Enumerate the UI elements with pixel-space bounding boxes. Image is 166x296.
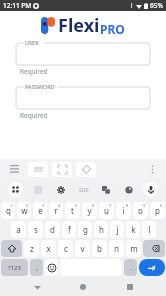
staticText: 8: [126, 203, 129, 208]
button[interactable]: h: [94, 221, 108, 238]
staticText: 3: [42, 203, 45, 208]
button[interactable]: s: [28, 221, 43, 238]
staticText: t: [71, 205, 74, 216]
button[interactable]: Shift: [1, 240, 22, 257]
staticText: c: [64, 243, 68, 254]
staticText: Required: [20, 111, 48, 120]
button[interactable]: o: [133, 202, 148, 219]
button[interactable]: ,: [30, 259, 43, 276]
staticText: PASSWORD: [25, 83, 55, 90]
staticText: r: [54, 205, 58, 216]
button[interactable]: x: [41, 240, 56, 257]
staticText: d: [50, 224, 55, 235]
button[interactable]: j: [110, 221, 124, 238]
button[interactable]: Emoji: [45, 259, 58, 276]
staticText: PRO: [100, 21, 125, 37]
staticText: s: [34, 224, 38, 235]
button[interactable]: Back: [27, 278, 47, 296]
button[interactable]: r: [49, 202, 63, 219]
button[interactable]: k: [126, 221, 140, 238]
button[interactable]: m: [126, 240, 141, 257]
button[interactable]: .: [124, 259, 137, 276]
button[interactable]: a: [11, 221, 26, 238]
staticText: GIF: [79, 186, 89, 194]
button[interactable]: GIF: [76, 182, 91, 197]
staticText: e: [38, 205, 43, 216]
button[interactable]: t: [65, 202, 80, 219]
button[interactable]: w: [17, 202, 31, 219]
button[interactable]: y: [82, 202, 97, 219]
button[interactable]: ?123: [1, 259, 28, 276]
button[interactable]: Menu: [6, 161, 22, 177]
button[interactable]: c: [58, 240, 73, 257]
staticText: i: [122, 205, 125, 216]
button[interactable]: i: [116, 202, 131, 219]
button[interactable]: f: [62, 221, 76, 238]
button[interactable]: l: [142, 221, 156, 238]
staticText: q: [6, 205, 11, 216]
button[interactable]: e: [33, 202, 47, 219]
button[interactable]: Translate: [98, 182, 113, 197]
staticText: Required: [20, 67, 48, 76]
staticText: l: [148, 224, 151, 235]
staticText: h: [99, 224, 104, 235]
button[interactable]: p: [150, 202, 165, 219]
staticText: 6: [92, 203, 95, 208]
button[interactable]: More options: [144, 161, 160, 177]
staticText: n: [114, 243, 119, 254]
staticText: b: [97, 243, 102, 254]
staticText: u: [104, 205, 109, 216]
button[interactable]: q: [1, 202, 15, 219]
staticText: Flexi: [58, 13, 100, 38]
staticText: 12:11 PM: [3, 1, 32, 10]
button[interactable]: d: [45, 221, 60, 238]
button[interactable]: USER: [16, 39, 150, 65]
button[interactable]: Keyboard apps: [8, 182, 23, 197]
button[interactable]: Voice input: [143, 182, 158, 197]
staticText: w: [21, 205, 28, 216]
staticText: x: [46, 243, 51, 254]
staticText: 5: [75, 203, 78, 208]
button[interactable]: u: [99, 202, 114, 219]
button[interactable]: z: [24, 240, 39, 257]
staticText: 65%: [150, 1, 163, 10]
button[interactable]: Select all: [52, 162, 72, 177]
button[interactable]: Clear: [76, 162, 96, 177]
button[interactable]: Home: [73, 278, 93, 296]
staticText: j: [116, 224, 119, 235]
staticText: ?123: [8, 264, 21, 272]
button[interactable]: Clipboard: [28, 162, 48, 177]
staticText: z: [30, 243, 34, 254]
staticText: p: [155, 205, 160, 216]
staticText: y: [87, 205, 92, 216]
staticText: USER: [25, 39, 39, 46]
staticText: 1: [10, 203, 13, 208]
button[interactable]: Backspace: [143, 240, 165, 257]
button[interactable]: PASSWORD: [16, 83, 150, 109]
staticText: g: [83, 224, 88, 235]
staticText: 0: [160, 203, 163, 208]
button[interactable]: Settings: [53, 182, 68, 197]
button[interactable]: Recents: [120, 278, 140, 296]
button[interactable]: n: [109, 240, 124, 257]
staticText: a: [16, 224, 21, 235]
staticText: f: [68, 224, 71, 235]
staticText: o: [138, 205, 143, 216]
staticText: .: [130, 263, 132, 273]
staticText: 9: [143, 203, 146, 208]
button[interactable]: v: [75, 240, 90, 257]
staticText: 7: [109, 203, 112, 208]
staticText: 4: [58, 203, 61, 208]
button[interactable]: Themes: [121, 182, 136, 197]
button[interactable]: b: [92, 240, 107, 257]
staticText: m: [130, 243, 138, 254]
button[interactable]: g: [78, 221, 92, 238]
staticText: 2: [26, 203, 29, 208]
staticText: v: [80, 243, 85, 254]
staticText: k: [131, 224, 136, 235]
staticText: ,: [36, 263, 38, 273]
button[interactable]: Enter: [139, 259, 165, 276]
button[interactable]: Stickers: [30, 182, 45, 197]
